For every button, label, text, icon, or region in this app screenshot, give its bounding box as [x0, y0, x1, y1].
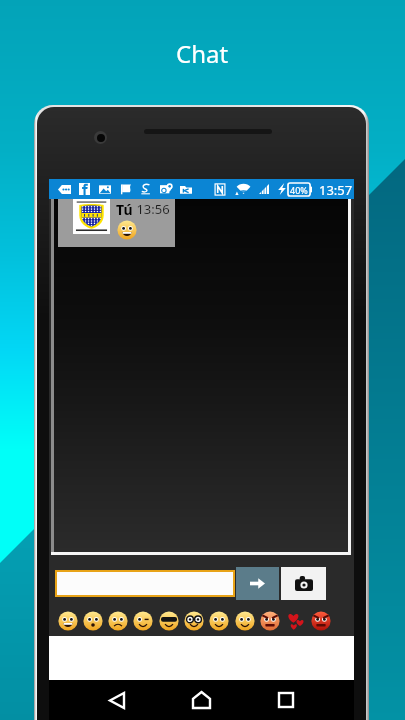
staticText: 40% [290, 184, 308, 196]
button[interactable]: Emoji [105, 608, 130, 633]
button[interactable]: Back [99, 682, 135, 718]
button[interactable]: Home [183, 682, 219, 718]
button[interactable]: Emoji [257, 608, 282, 633]
button[interactable]: Emoji [130, 608, 155, 633]
button[interactable]: Recent apps [268, 682, 304, 718]
button[interactable]: Camera [281, 567, 326, 600]
button[interactable]: Send [236, 567, 279, 600]
button[interactable]: Emoji [282, 608, 307, 633]
staticText: Chat [176, 37, 229, 70]
button[interactable]: Emoji [206, 608, 231, 633]
button[interactable]: Tú [58, 199, 175, 247]
button[interactable]: Emoji [308, 608, 333, 633]
button[interactable]: Emoji [232, 608, 257, 633]
staticText: Tú [116, 200, 133, 219]
button[interactable]: Emoji [80, 608, 105, 633]
button[interactable]: Emoji [55, 608, 80, 633]
button[interactable]: Emoji [181, 608, 206, 633]
staticText: 13:57 [319, 181, 353, 199]
staticText: 13:56 [133, 200, 170, 218]
button[interactable]: Emoji [156, 608, 181, 633]
